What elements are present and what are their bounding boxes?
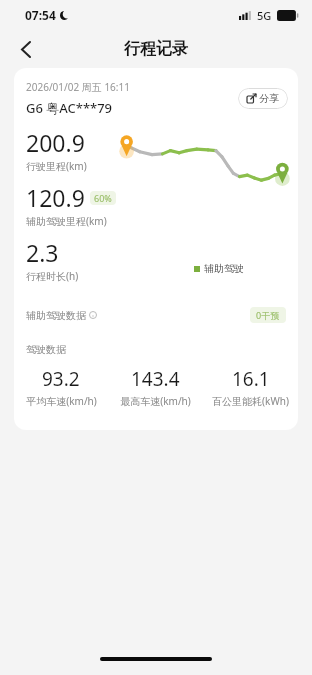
- staticText: 分享: [259, 92, 279, 105]
- staticText: 0干预: [256, 309, 280, 321]
- staticText: 行程时长(h): [26, 269, 79, 283]
- staticText: 93.2: [42, 366, 80, 392]
- staticText: 2.3: [26, 237, 59, 268]
- staticText: 辅助驾驶: [204, 262, 244, 275]
- staticText: 行程记录: [124, 39, 188, 59]
- button[interactable]: 分享: [238, 88, 288, 109]
- staticText: 行驶里程(km): [26, 159, 87, 173]
- staticText: 5G: [257, 8, 272, 23]
- button[interactable]: 辅助驾驶数据: [14, 305, 298, 325]
- staticText: 2026/01/02 周五 16:11: [26, 80, 130, 94]
- staticText: 60%: [94, 192, 112, 204]
- staticText: 百公里能耗(kWh): [212, 394, 289, 408]
- staticText: 辅助驾驶数据: [26, 309, 86, 322]
- staticText: 最高车速(km/h): [120, 394, 191, 408]
- staticText: 07:54: [25, 7, 56, 23]
- staticText: 辅助驾驶里程(km): [26, 214, 107, 228]
- staticText: 16.1: [232, 366, 270, 392]
- button[interactable]: Back: [8, 31, 44, 67]
- staticText: 平均车速(km/h): [26, 394, 97, 408]
- staticText: 驾驶数据: [26, 343, 66, 356]
- staticText: G6 粤AC***79: [26, 99, 113, 117]
- staticText: 120.9: [26, 182, 85, 213]
- staticText: 200.9: [26, 127, 85, 158]
- staticText: 143.4: [131, 366, 180, 392]
